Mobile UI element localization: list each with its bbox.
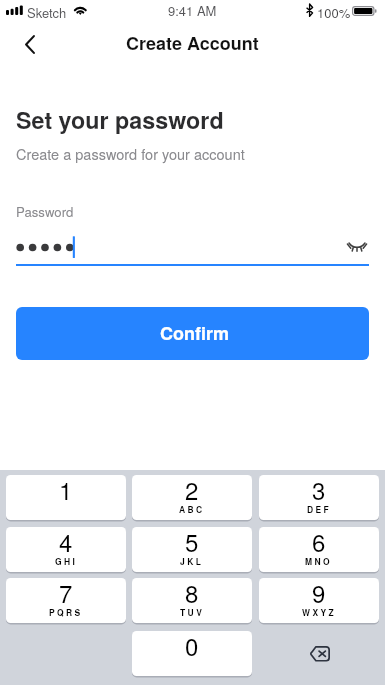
staticText: 9:41 AM [168, 1, 217, 20]
button[interactable]: 8 [132, 578, 252, 623]
staticText: 5 [185, 527, 199, 558]
staticText: 8 [185, 578, 199, 609]
button[interactable]: 5 [132, 527, 252, 572]
staticText: JKL [180, 555, 204, 567]
button[interactable]: Confirm [16, 307, 369, 360]
button[interactable]: 6 [259, 527, 379, 572]
staticText: 9 [312, 578, 326, 609]
staticText: MNO [305, 555, 333, 567]
staticText: 7 [59, 578, 73, 609]
staticText: Create Account [126, 30, 259, 56]
staticText: 1 [59, 475, 73, 506]
button[interactable]: 1 [6, 475, 126, 520]
button[interactable]: Back [8, 22, 52, 66]
button[interactable]: 2 [132, 475, 252, 520]
staticText: Create a password for your account [16, 143, 245, 164]
button[interactable]: 3 [259, 475, 379, 520]
staticText: WXYZ [302, 606, 337, 618]
staticText: Confirm [160, 320, 229, 346]
staticText: 2 [185, 475, 199, 506]
button[interactable]: 9 [259, 578, 379, 623]
staticText: 6 [312, 527, 326, 558]
staticText: Sketch [27, 3, 67, 22]
button[interactable]: Show password [340, 233, 374, 259]
button[interactable]: 7 [6, 578, 126, 623]
staticText: DEF [307, 503, 332, 515]
staticText: 100% [317, 3, 351, 22]
staticText: TUV [180, 606, 205, 618]
staticText: Set your password [16, 103, 224, 136]
staticText: 0 [185, 631, 199, 662]
button[interactable]: 4 [6, 527, 126, 572]
staticText: PQRS [49, 606, 83, 618]
button[interactable]: Backspace [259, 631, 379, 676]
button[interactable]: 0 [132, 631, 252, 676]
staticText: GHI [55, 555, 78, 567]
staticText: 3 [312, 475, 326, 506]
staticText: 4 [59, 527, 73, 558]
staticText: Password [16, 202, 74, 221]
staticText: ABC [179, 503, 205, 515]
